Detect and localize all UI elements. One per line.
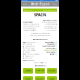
staticText: VAR A. Martinez bbox=[47, 29, 57, 31]
staticText: MATCH OFFICIALS bbox=[43, 19, 57, 21]
staticText: Oyarzabal bbox=[46, 51, 54, 53]
staticText: Share bbox=[52, 3, 57, 5]
staticText: 2 bbox=[23, 55, 24, 57]
staticText: Assistant 1 D. Bonilla bbox=[45, 23, 57, 25]
staticText: 612 bbox=[23, 53, 26, 55]
staticText: Rodri · Fabian · Pedri bbox=[23, 27, 36, 29]
staticText: Final 3 — 1 · Half-time 2 — 0 bbox=[33, 62, 46, 64]
staticText: Total shots bbox=[25, 43, 32, 45]
staticText: 17 bbox=[23, 43, 25, 45]
staticText: 78' bbox=[55, 53, 57, 55]
staticText: LINE-UPS bbox=[24, 70, 31, 72]
staticText: 42% bbox=[54, 41, 57, 43]
staticText: Referee M. Rodriguez bbox=[42, 21, 57, 23]
staticText: 9:41 bbox=[40, 0, 43, 1]
staticText: Shots on target bbox=[24, 45, 34, 47]
button[interactable]: GALLERY bbox=[35, 76, 45, 80]
staticText: 0 bbox=[23, 57, 24, 59]
staticText: 2 bbox=[23, 51, 24, 53]
staticText: Match Report bbox=[30, 2, 49, 6]
staticText: Fouls committed bbox=[25, 49, 35, 51]
button[interactable]: LINE-UPS bbox=[23, 68, 33, 74]
button[interactable]: TIMELINE bbox=[35, 68, 45, 74]
staticText: VIDEO bbox=[25, 78, 30, 80]
staticText: Assistant 2 J. Porras bbox=[44, 25, 57, 27]
staticText: 4 bbox=[56, 47, 57, 49]
staticText: Passes completed bbox=[26, 53, 39, 55]
staticText: PLAYERS bbox=[48, 70, 55, 72]
staticText: Merino bbox=[49, 53, 54, 55]
staticText: Saturday 14 June · Kick-off 21:00 bbox=[29, 35, 50, 36]
staticText: Simon · Carvajal · Laporte bbox=[23, 23, 39, 25]
staticText: SHARE bbox=[49, 78, 54, 80]
staticText: GOALS 12' 37' 74' bbox=[23, 59, 34, 61]
button[interactable]: VIDEO bbox=[23, 76, 33, 80]
staticText: 58% bbox=[23, 41, 26, 43]
staticText: MATCH STATISTICS bbox=[32, 38, 47, 40]
staticText: Possession bbox=[44, 41, 53, 43]
staticText: GALLERY bbox=[36, 78, 43, 80]
staticText: ‹ Back bbox=[23, 3, 27, 5]
staticText: Yellow cards bbox=[24, 55, 33, 57]
staticText: Estadio de La Cartuja · Sevilla bbox=[31, 33, 49, 34]
staticText: Fourth official L. Diaz bbox=[44, 27, 57, 29]
staticText: Shots on target bbox=[42, 45, 55, 47]
staticText: TIMELINE bbox=[36, 70, 44, 72]
staticText: Red cards bbox=[24, 57, 32, 59]
staticText: STARTING XI bbox=[23, 21, 33, 23]
staticText: SPAIN bbox=[34, 12, 46, 17]
staticText: Offsides bbox=[24, 51, 30, 53]
staticText: Match Centre bbox=[34, 65, 45, 67]
staticText: Corners won bbox=[45, 47, 55, 49]
button[interactable]: PLAYERS bbox=[47, 68, 57, 74]
staticText: Possession bbox=[26, 41, 35, 43]
staticText: 8 bbox=[23, 45, 24, 47]
staticText: Yamal · Morata · Williams bbox=[23, 29, 36, 31]
staticText: 3 bbox=[56, 45, 57, 47]
staticText: GROUP B · MATCH 12 bbox=[43, 9, 56, 11]
staticText: SUBSTITUTIONS bbox=[44, 49, 57, 51]
staticText: Total shots bbox=[46, 43, 55, 45]
button[interactable]: Share bbox=[51, 2, 58, 7]
staticText: WORLD CUP bbox=[24, 9, 32, 11]
staticText: Le Normand · Cucurella bbox=[23, 25, 39, 27]
button[interactable]: Back bbox=[21, 2, 29, 7]
staticText: 62' bbox=[55, 51, 57, 53]
button[interactable]: SHARE bbox=[47, 76, 57, 80]
staticText: Corners won bbox=[24, 47, 34, 49]
staticText: 11 bbox=[23, 49, 25, 51]
